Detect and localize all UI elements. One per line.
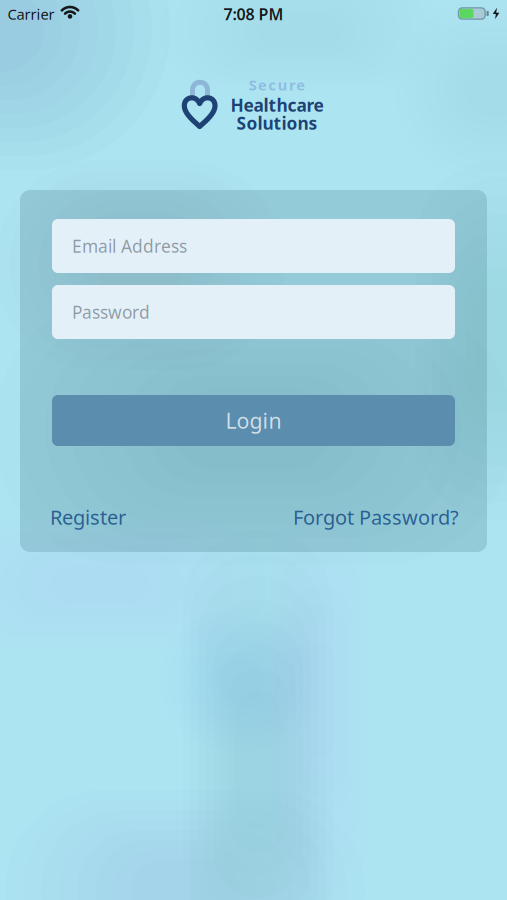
staticText: 7:08 PM: [223, 3, 283, 25]
staticText: Password: [72, 300, 150, 323]
staticText: Secure: [249, 75, 305, 94]
staticText: Email Address: [72, 234, 187, 257]
staticText: Register: [50, 504, 126, 530]
textField[interactable]: Email Address: [72, 234, 455, 257]
staticText: Email Address: [72, 234, 187, 257]
button[interactable]: Register: [50, 504, 126, 530]
secureTextField[interactable]: Password: [72, 300, 455, 323]
staticText: Healthcare: [230, 93, 323, 116]
staticText: Solutions: [236, 111, 317, 134]
staticText: Login: [225, 406, 281, 435]
staticText: Forgot Password?: [293, 504, 459, 530]
staticText: Carrier: [7, 4, 54, 24]
staticText: Password: [72, 300, 150, 323]
button[interactable]: Forgot Password?: [293, 504, 459, 530]
button[interactable]: Login: [52, 395, 455, 446]
